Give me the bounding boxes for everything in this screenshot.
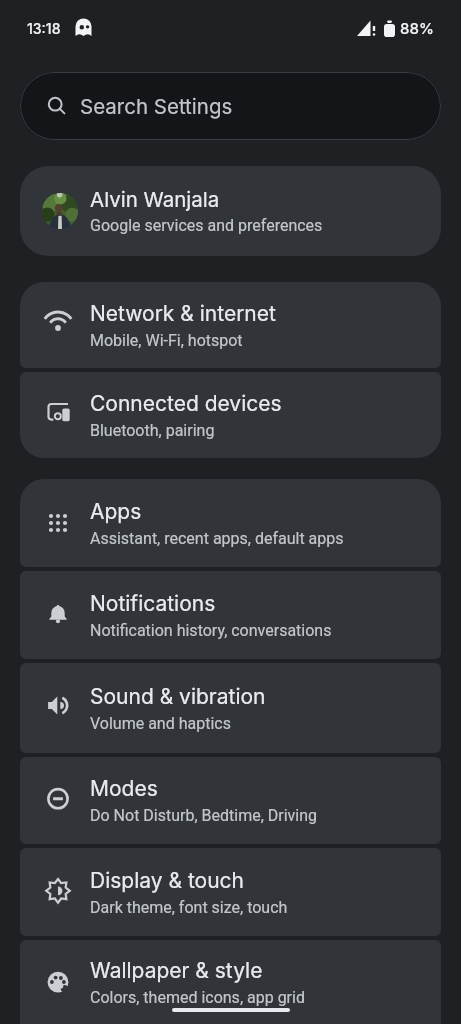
staticText: Mobile, Wi-Fi, hotspot	[90, 331, 243, 350]
staticText: Search Settings	[80, 94, 233, 119]
button[interactable]: Sound & vibration	[20, 663, 441, 753]
button[interactable]: Search Settings	[20, 72, 441, 140]
staticText: Assistant, recent apps, default apps	[90, 529, 344, 548]
button[interactable]: Modes	[20, 757, 441, 844]
staticText: Modes	[90, 776, 158, 801]
staticText: Colors, themed icons, app grid	[90, 988, 305, 1007]
staticText: Alvin Wanjala	[90, 187, 220, 212]
staticText: Network & internet	[90, 301, 276, 326]
staticText: Dark theme, font size, touch	[90, 898, 288, 917]
staticText: 13:18	[27, 20, 61, 37]
staticText: Sound & vibration	[90, 684, 266, 709]
button[interactable]: Display & touch	[20, 848, 441, 936]
staticText: Do Not Disturb, Bedtime, Driving	[90, 806, 318, 825]
button[interactable]: Connected devices	[20, 372, 441, 458]
staticText: 88%	[400, 19, 434, 37]
staticText: Bluetooth, pairing	[90, 421, 215, 440]
staticText: Volume and haptics	[90, 714, 231, 733]
staticText: Google services and preferences	[90, 216, 323, 235]
staticText: Notifications	[90, 591, 216, 616]
staticText: Connected devices	[90, 391, 282, 416]
staticText: Display & touch	[90, 868, 244, 893]
button[interactable]: Alvin Wanjala	[20, 166, 441, 256]
button[interactable]: Notifications	[20, 571, 441, 659]
button[interactable]: Wallpaper & style	[20, 940, 441, 1024]
button[interactable]: Network & internet	[20, 282, 441, 368]
staticText: Notification history, conversations	[90, 621, 332, 640]
staticText: Apps	[90, 499, 142, 524]
button[interactable]: Apps	[20, 479, 441, 567]
staticText: Wallpaper & style	[90, 958, 263, 983]
